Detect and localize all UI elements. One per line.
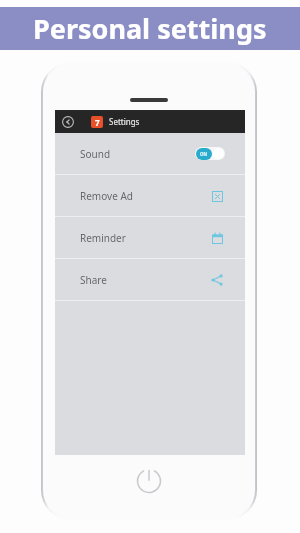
staticText: Reminder <box>80 231 126 245</box>
staticText: Sound <box>80 147 111 161</box>
button[interactable]: Share <box>55 259 245 300</box>
button[interactable]: Home <box>132 464 166 498</box>
staticText: Remove Ad <box>80 189 133 203</box>
button[interactable]: Reminder <box>209 230 225 246</box>
button[interactable]: Remove Ad <box>55 175 245 216</box>
staticText: Personal settings <box>33 10 267 47</box>
button[interactable]: Share <box>209 272 225 288</box>
button[interactable]: Sound on <box>195 147 225 160</box>
staticText: Settings <box>109 116 140 127</box>
button[interactable]: Back <box>60 114 76 130</box>
button[interactable]: Remove Ad <box>209 188 225 204</box>
staticText: 7 <box>95 117 100 128</box>
button[interactable]: Sound <box>55 133 245 174</box>
staticText: ON <box>200 151 208 157</box>
staticText: Share <box>80 273 107 287</box>
button[interactable]: Reminder <box>55 217 245 258</box>
